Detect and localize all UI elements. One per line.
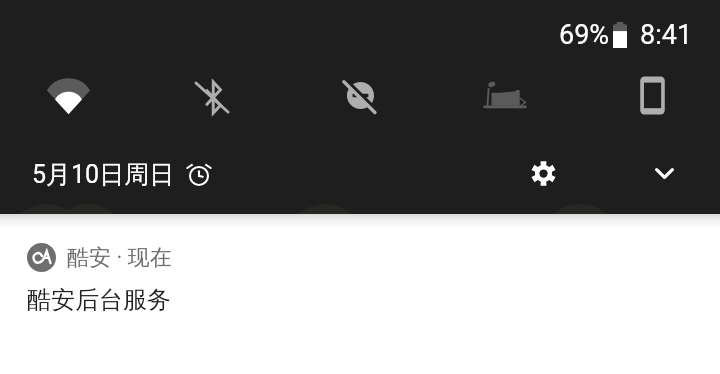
staticText: 69% xyxy=(559,19,610,51)
button[interactable]: Expand quick settings xyxy=(642,151,687,196)
staticText: 5月10日周日 xyxy=(32,159,175,189)
staticText: 8:41 xyxy=(640,19,693,51)
button[interactable]: 酷安 · 现在 xyxy=(0,214,720,333)
button[interactable]: Settings xyxy=(521,151,566,196)
button[interactable]: Do not disturb off xyxy=(332,67,388,123)
button[interactable]: Bluetooth off xyxy=(184,69,240,125)
button[interactable]: Wi-Fi xyxy=(40,68,96,124)
staticText: 酷安后台服务 xyxy=(27,285,171,315)
button[interactable]: Bedtime mode xyxy=(477,67,533,123)
button[interactable]: Screen rotation xyxy=(624,67,680,123)
staticText: 酷安 · 现在 xyxy=(67,244,172,272)
